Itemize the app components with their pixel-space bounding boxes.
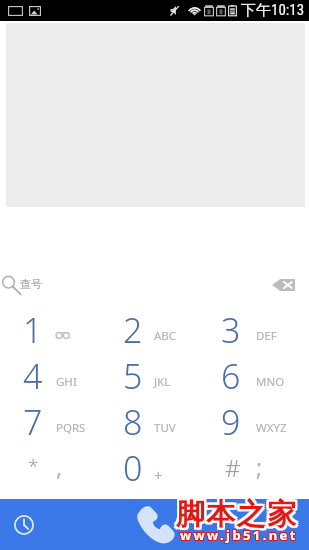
staticText: 7 bbox=[23, 399, 43, 445]
button[interactable]: 3 bbox=[171, 307, 309, 353]
staticText: MNO bbox=[256, 374, 285, 390]
staticText: 脚本之家 bbox=[176, 496, 298, 533]
staticText: www.jb51.net bbox=[181, 527, 299, 545]
staticText: ABC bbox=[154, 328, 177, 344]
staticText: 脚本之家 bbox=[178, 494, 300, 531]
staticText: www.jb51.net bbox=[179, 526, 297, 544]
staticText: , bbox=[56, 451, 63, 482]
staticText: 脚本之家 bbox=[174, 498, 296, 535]
staticText: 脚本之家 bbox=[176, 498, 298, 535]
staticText: 6 bbox=[221, 353, 241, 399]
staticText: 9 bbox=[221, 399, 241, 445]
staticText: www.jb51.net bbox=[180, 526, 298, 544]
staticText: + bbox=[154, 465, 163, 485]
button[interactable]: Recent calls bbox=[6, 507, 42, 543]
staticText: 4 bbox=[23, 353, 43, 399]
staticText: 脚本之家 bbox=[178, 496, 300, 533]
staticText: DEF bbox=[256, 328, 277, 344]
staticText: 脚本之家 bbox=[174, 496, 296, 533]
button[interactable]: Backspace bbox=[265, 268, 301, 302]
staticText: www.jb51.net bbox=[181, 525, 299, 543]
staticText: PQRS bbox=[56, 420, 86, 436]
staticText: 脚本之家 bbox=[176, 494, 298, 531]
staticText: 0 bbox=[123, 445, 143, 490]
staticText: 3 bbox=[221, 307, 241, 353]
button[interactable]: * bbox=[0, 445, 72, 490]
button[interactable]: Call bbox=[132, 497, 178, 543]
button[interactable]: 查号 bbox=[2, 270, 42, 300]
button[interactable]: 1 bbox=[0, 307, 72, 353]
button[interactable]: 4 bbox=[0, 353, 72, 399]
staticText: 5 bbox=[123, 353, 143, 399]
button[interactable]: 5 bbox=[72, 353, 171, 399]
staticText: www.jb51.net bbox=[180, 525, 298, 543]
staticText: 8 bbox=[123, 399, 143, 445]
staticText: www.jb51.net bbox=[179, 525, 297, 543]
staticText: GHI bbox=[56, 374, 77, 390]
staticText: 下午10:13 bbox=[241, 1, 305, 20]
button[interactable]: # bbox=[171, 445, 309, 490]
button[interactable]: 0 bbox=[72, 445, 171, 490]
button[interactable]: 7 bbox=[0, 399, 72, 445]
staticText: * bbox=[28, 453, 39, 479]
button[interactable]: 8 bbox=[72, 399, 171, 445]
staticText: 2 bbox=[123, 307, 143, 353]
staticText: 脚本之家 bbox=[178, 498, 300, 535]
staticText: WXYZ bbox=[256, 420, 287, 436]
staticText: 1 bbox=[23, 307, 43, 353]
staticText: TUV bbox=[154, 420, 176, 436]
button[interactable]: 9 bbox=[171, 399, 309, 445]
staticText: 脚本之家 bbox=[174, 494, 296, 531]
staticText: www.jb51.net bbox=[180, 527, 298, 545]
button[interactable]: 2 bbox=[72, 307, 171, 353]
staticText: 查号 bbox=[20, 277, 42, 291]
button[interactable]: 6 bbox=[171, 353, 309, 399]
staticText: JKL bbox=[154, 374, 171, 390]
staticText: www.jb51.net bbox=[179, 527, 297, 545]
staticText: ; bbox=[256, 451, 263, 482]
staticText: www.jb51.net bbox=[181, 526, 299, 544]
staticText: # bbox=[225, 451, 241, 484]
